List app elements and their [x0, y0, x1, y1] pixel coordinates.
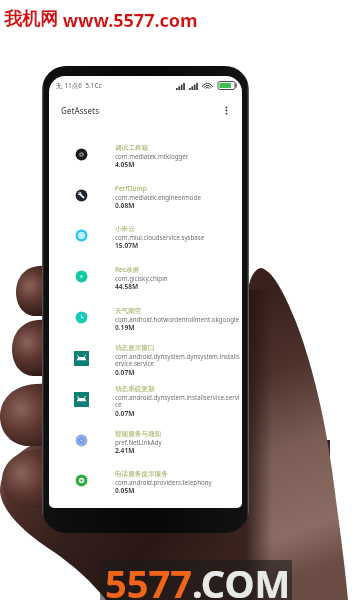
staticText: 动态显示窗口 — [115, 344, 155, 352]
staticText: 0.19M — [115, 323, 135, 332]
staticText: .COM — [192, 557, 291, 600]
staticText: 无 11点6 5.1Cc — [56, 81, 102, 90]
staticText: 电话服务提示服务 — [115, 470, 168, 478]
staticText: com.gicisky.chipin — [115, 274, 168, 282]
staticText: com.android.dynsystem.installservice.ser… — [115, 393, 241, 409]
button[interactable]: 动态系统更新 — [49, 379, 242, 419]
staticText: 天气闹空 — [115, 307, 142, 315]
staticText: 小米云 — [115, 225, 135, 233]
button[interactable]: Rec录屏 — [49, 256, 242, 296]
staticText: pref.NetLinkAdy — [115, 438, 162, 446]
staticText: 动态系统更新 — [115, 385, 155, 393]
button[interactable]: PerfDump — [49, 175, 242, 215]
staticText: com.android.providers.telephony — [115, 478, 212, 486]
button[interactable]: 天气闹空 — [49, 297, 242, 337]
staticText: com.mediatek.engineermode — [115, 193, 201, 201]
button[interactable]: 动态显示窗口 — [49, 338, 242, 378]
staticText: com.android.hotwordenrollment.okgoogle — [115, 315, 240, 323]
staticText: 我机网 — [4, 8, 58, 31]
button[interactable]: 调试工具箱 — [49, 134, 242, 174]
staticText: GetAssets — [61, 105, 100, 116]
staticText: 0.07M — [115, 409, 135, 418]
staticText: 44.58M — [115, 282, 139, 291]
staticText: 15.07M — [115, 241, 139, 250]
staticText: 智能服务与通知 — [115, 430, 162, 438]
staticText: 调试工具箱 — [115, 144, 148, 152]
staticText: 0.08M — [115, 201, 135, 210]
button[interactable]: 电话服务提示服务 — [49, 460, 242, 500]
staticText: com.mediatek.mtklogger — [115, 152, 189, 160]
button[interactable]: GetAssets — [52, 96, 237, 124]
staticText: 5577 — [105, 557, 192, 600]
staticText: 0.05M — [115, 486, 135, 495]
staticText: 0.07M — [115, 368, 135, 377]
staticText: com.miui.cloudservice.sysbase — [115, 233, 205, 241]
staticText: PerfDump — [115, 184, 147, 193]
staticText: 2.41M — [115, 446, 135, 455]
staticText: Rec录屏 — [115, 265, 140, 274]
staticText: 4.05M — [115, 160, 135, 169]
button[interactable]: 小米云 — [49, 215, 242, 255]
staticText: www.5577.com — [58, 8, 198, 33]
staticText: com.android.dynsystem.dynsystem.installs… — [115, 352, 241, 368]
button[interactable]: 智能服务与通知 — [49, 420, 242, 460]
button[interactable]: More options — [218, 102, 234, 118]
